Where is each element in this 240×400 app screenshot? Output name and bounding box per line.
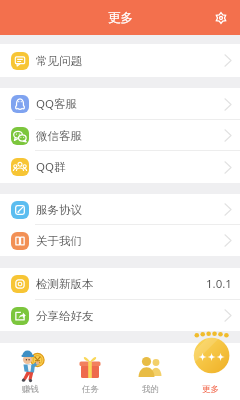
button[interactable]: 常见问题 (0, 44, 240, 77)
staticText: 更多 (202, 384, 219, 395)
button[interactable]: 更多 (180, 331, 240, 400)
button[interactable]: 赚钱 (0, 331, 60, 400)
staticText: QQ客服 (36, 96, 77, 112)
button[interactable]: 关于我们 (0, 225, 240, 256)
staticText: 我的 (142, 384, 159, 395)
button[interactable]: 服务协议 (0, 194, 240, 225)
staticText: 分享给好友 (36, 309, 94, 323)
staticText: 微信客服 (36, 129, 82, 143)
staticText: 任务 (82, 384, 99, 395)
staticText: 检测新版本 (36, 277, 94, 291)
staticText: QQ群 (36, 159, 66, 175)
button[interactable]: 我的 (120, 331, 180, 400)
button[interactable]: 微信客服 (0, 120, 240, 151)
button[interactable]: 检测新版本 (0, 268, 240, 300)
button[interactable]: 任务 (60, 331, 120, 400)
staticText: 赚钱 (22, 384, 39, 395)
staticText: 常见问题 (36, 54, 82, 68)
staticText: 服务协议 (36, 203, 82, 217)
button[interactable]: Settings (211, 8, 231, 28)
staticText: 关于我们 (36, 234, 82, 248)
staticText: 1.0.1 (206, 276, 232, 292)
staticText: 更多 (108, 10, 133, 26)
button[interactable]: 分享给好友 (0, 300, 240, 331)
button[interactable]: QQ群 (0, 151, 240, 183)
button[interactable]: QQ客服 (0, 88, 240, 120)
